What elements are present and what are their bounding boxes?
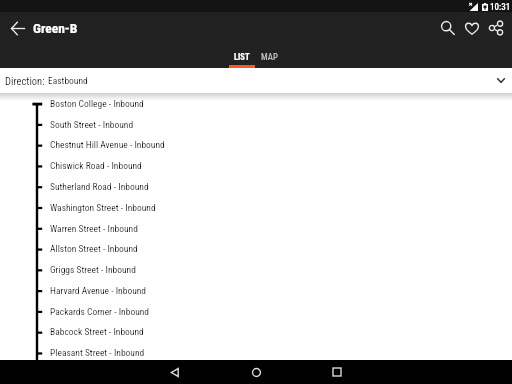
button[interactable]: Back (163, 360, 187, 384)
staticText: Green-B (33, 20, 78, 36)
button[interactable]: Chiswick Road - Inbound (0, 155, 512, 176)
button[interactable]: Direction: (0, 68, 512, 93)
staticText: Washington Street - Inbound (50, 202, 156, 213)
staticText: Chestnut Hill Avenue - Inbound (50, 139, 165, 150)
staticText: LIST (234, 52, 250, 62)
button[interactable]: South Street - Inbound (0, 114, 512, 135)
staticText: Pleasant Street - Inbound (50, 347, 145, 358)
button[interactable]: Allston Street - Inbound (0, 238, 512, 259)
staticText: 10:31 (490, 2, 511, 13)
staticText: Direction: (5, 75, 45, 87)
button[interactable]: Recent apps (325, 360, 349, 384)
button[interactable]: Pleasant Street - Inbound (0, 342, 512, 363)
staticText: Warren Street - Inbound (50, 223, 138, 234)
button[interactable]: Warren Street - Inbound (0, 218, 512, 239)
staticText: Eastbound (48, 75, 88, 86)
staticText: Allston Street - Inbound (50, 243, 138, 254)
staticText: Chiswick Road - Inbound (50, 160, 142, 171)
button[interactable]: LIST (222, 44, 262, 68)
button[interactable]: Navigate up (5, 15, 31, 41)
button[interactable]: MAP (249, 44, 289, 68)
button[interactable]: Harvard Avenue - Inbound (0, 280, 512, 301)
staticText: Sutherland Road - Inbound (50, 181, 149, 192)
button[interactable]: Home (244, 360, 268, 384)
staticText: MAP (261, 52, 278, 62)
button[interactable]: Babcock Street - Inbound (0, 321, 512, 342)
button[interactable]: Griggs Street - Inbound (0, 259, 512, 280)
button[interactable]: Packards Corner - Inbound (0, 301, 512, 322)
button[interactable]: Favorite (459, 15, 485, 41)
button[interactable]: Share (483, 15, 509, 41)
button[interactable]: Chestnut Hill Avenue - Inbound (0, 134, 512, 155)
staticText: Harvard Avenue - Inbound (50, 285, 147, 296)
staticText: Griggs Street - Inbound (50, 264, 136, 275)
staticText: Boston College - Inbound (50, 98, 144, 109)
staticText: Babcock Street - Inbound (50, 326, 144, 337)
button[interactable]: Search (435, 15, 461, 41)
button[interactable]: Sutherland Road - Inbound (0, 176, 512, 197)
staticText: Packards Corner - Inbound (50, 306, 150, 317)
button[interactable]: Washington Street - Inbound (0, 197, 512, 218)
staticText: South Street - Inbound (50, 119, 134, 130)
button[interactable]: Boston College - Inbound (0, 93, 512, 114)
